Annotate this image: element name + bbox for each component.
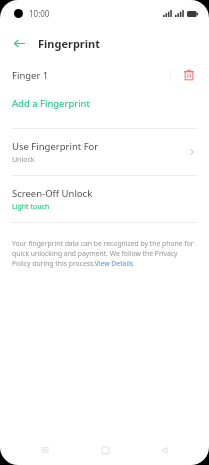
- button[interactable]: Home: [90, 435, 120, 465]
- staticText: Fingerprint: [38, 36, 100, 51]
- staticText: 10:00: [29, 8, 50, 19]
- staticText: Screen-Off Unlock: [12, 187, 93, 200]
- staticText: Use Fingerprint For: [12, 140, 99, 153]
- button[interactable]: Delete fingerprint: [181, 67, 197, 83]
- staticText: Light touch: [12, 202, 50, 212]
- button[interactable]: Finger 1: [0, 60, 209, 90]
- staticText: Unlock: [12, 155, 35, 165]
- staticText: Finger 1: [12, 69, 49, 82]
- button[interactable]: Recent apps: [30, 435, 60, 465]
- button[interactable]: Add a Fingerprint: [0, 90, 209, 116]
- button[interactable]: Back: [149, 435, 179, 465]
- staticText: Add a Fingerprint: [12, 97, 90, 110]
- staticText: Your fingerprint data can be recognized …: [12, 239, 195, 268]
- button[interactable]: Back: [6, 30, 32, 56]
- button[interactable]: Use Fingerprint For: [0, 129, 209, 175]
- button[interactable]: Screen-Off Unlock: [0, 176, 209, 222]
